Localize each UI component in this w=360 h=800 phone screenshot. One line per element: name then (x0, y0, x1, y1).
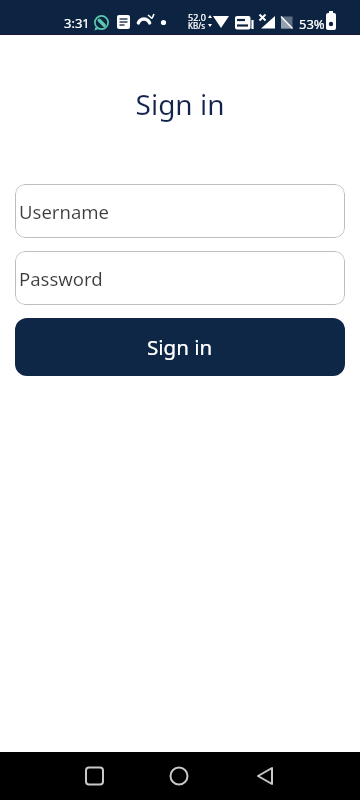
button[interactable] (250, 761, 297, 791)
staticText: 53% (299, 15, 325, 33)
button[interactable] (71, 761, 118, 791)
staticText: Sign in (147, 333, 213, 361)
button[interactable]: Username (15, 184, 345, 238)
staticText: 3:31 (64, 14, 90, 32)
staticText: 52.0 (188, 11, 206, 23)
staticText: Sign in (0, 85, 360, 123)
button[interactable]: Sign in (15, 318, 345, 376)
staticText: Password (19, 266, 103, 291)
staticText: KB/s (188, 20, 205, 31)
button[interactable]: Password (15, 251, 345, 305)
staticText: Username (19, 199, 110, 224)
button[interactable] (164, 761, 211, 791)
